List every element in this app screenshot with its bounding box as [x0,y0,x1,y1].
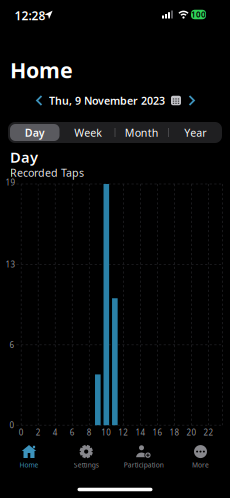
staticText: Recorded Taps [10,165,84,180]
staticText: 6 [9,339,14,350]
button[interactable]: Week [61,122,115,143]
button[interactable]: More [172,444,228,470]
staticText: Day [10,147,38,167]
staticText: 8 [87,427,92,438]
staticText: 18 [169,427,179,438]
staticText: More [192,461,209,469]
button[interactable]: Month [115,122,168,143]
staticText: 20 [186,427,196,438]
staticText: 4 [53,427,58,438]
button[interactable]: Previous day [31,92,47,108]
staticText: 0 [19,427,24,438]
staticText: 14 [135,427,145,438]
staticText: 19 [5,177,15,188]
staticText: 6 [70,427,75,438]
staticText: 2 [36,427,41,438]
staticText: 13 [5,259,15,270]
staticText: Day [25,125,45,140]
staticText: Thu, 9 November 2023 [49,93,165,108]
button[interactable]: Settings [58,444,114,470]
staticText: Month [125,125,159,140]
staticText: Home [10,56,73,84]
staticText: Year [184,125,206,140]
staticText: Settings [74,461,99,469]
button[interactable]: Day [8,122,61,143]
staticText: 100 [191,9,206,20]
button[interactable]: Choose date [49,93,181,108]
staticText: 12 [118,427,128,438]
staticText: Participation [124,461,164,469]
button[interactable]: Home [1,444,57,470]
button[interactable]: Year [168,122,222,143]
staticText: Week [74,125,102,140]
staticText: Home [19,461,38,469]
staticText: 22 [203,427,213,438]
staticText: 0 [9,420,14,430]
button[interactable]: Next day [184,92,200,108]
staticText: 16 [152,427,162,438]
staticText: 10 [101,427,111,438]
staticText: 12:28 [14,7,45,23]
button[interactable]: Participation [116,444,172,470]
